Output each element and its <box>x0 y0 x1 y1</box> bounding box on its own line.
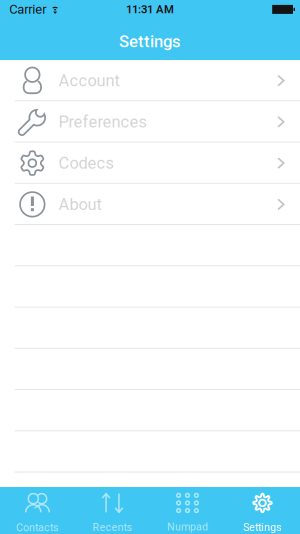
button[interactable]: About <box>0 184 300 225</box>
staticText: Numpad <box>167 521 208 533</box>
button[interactable]: Preferences <box>0 101 300 142</box>
button[interactable]: Numpad <box>150 487 225 534</box>
button[interactable]: Codecs <box>0 142 300 184</box>
staticText: Settings <box>243 521 282 534</box>
staticText: Settings <box>119 32 181 51</box>
button[interactable]: Contacts <box>0 487 75 534</box>
staticText: Contacts <box>16 521 59 534</box>
staticText: Codecs <box>59 153 114 173</box>
button[interactable]: Account <box>0 60 300 101</box>
staticText: Account <box>59 71 120 90</box>
button[interactable]: Settings <box>225 487 300 534</box>
staticText: 11:31 AM <box>126 3 174 16</box>
staticText: About <box>59 195 102 214</box>
staticText: Preferences <box>59 112 147 131</box>
button[interactable]: Recents <box>75 487 150 534</box>
staticText: Carrier <box>9 2 46 17</box>
staticText: Recents <box>92 521 132 534</box>
